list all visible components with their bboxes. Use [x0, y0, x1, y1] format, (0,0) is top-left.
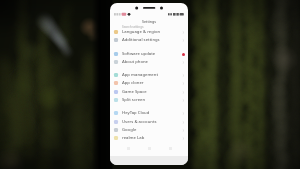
button[interactable]: Split screen — [110, 96, 188, 104]
staticText: Users & accounts — [122, 119, 157, 125]
button[interactable]: App cloner — [110, 79, 188, 87]
button[interactable]: Home — [146, 145, 152, 151]
button[interactable]: HeyTap Cloud — [110, 109, 188, 117]
staticText: HeyTap Cloud — [122, 110, 150, 116]
button[interactable]: Google — [110, 126, 188, 134]
button[interactable]: App management — [110, 71, 188, 79]
staticText: Google — [122, 127, 137, 133]
staticText: Software update — [122, 51, 156, 57]
staticText: App cloner — [122, 80, 144, 86]
button[interactable]: Game Space — [110, 88, 188, 96]
staticText: Search settings — [122, 25, 144, 29]
staticText: About phone — [122, 59, 149, 65]
staticText: App management — [122, 72, 159, 78]
staticText: Game Space — [122, 89, 147, 95]
button[interactable]: Language & region — [110, 28, 188, 36]
staticText: Settings — [142, 19, 156, 24]
staticText: Split screen — [122, 97, 146, 103]
button[interactable]: About phone — [110, 58, 188, 66]
button[interactable]: Recents — [167, 145, 173, 151]
button[interactable]: Users & accounts — [110, 118, 188, 126]
staticText: realme Lab — [122, 135, 145, 141]
staticText: Additional settings — [122, 37, 160, 43]
button[interactable]: realme Lab — [110, 134, 188, 142]
button[interactable]: Additional settings — [110, 36, 188, 44]
staticText: Language & region — [122, 29, 161, 35]
button[interactable]: Back — [125, 145, 131, 151]
button[interactable]: Software update — [110, 50, 188, 58]
